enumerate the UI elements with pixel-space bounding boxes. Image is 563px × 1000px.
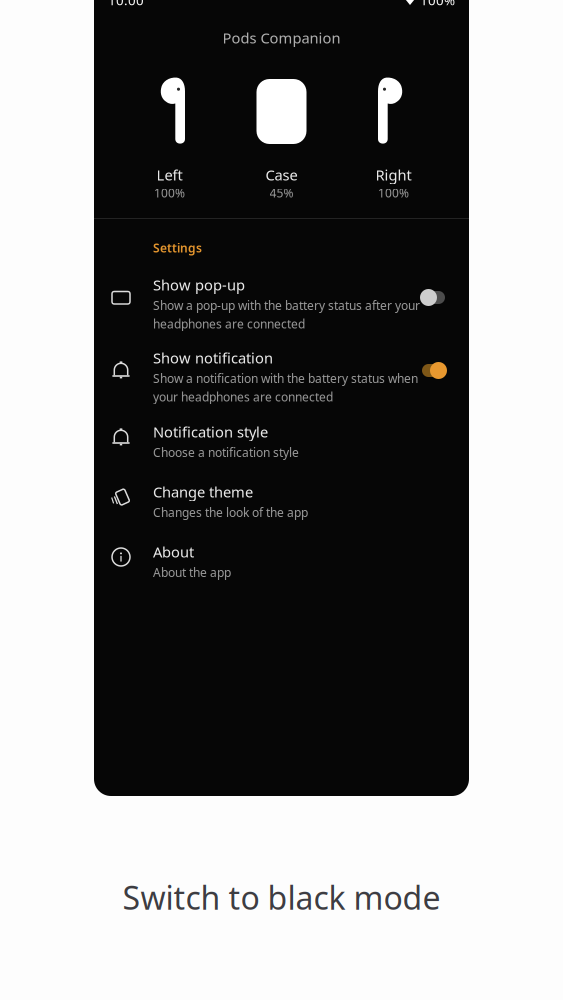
button[interactable]: Show pop-up: [94, 277, 469, 351]
staticText: 10:00: [108, 0, 144, 9]
staticText: Show a notification with the battery sta…: [153, 370, 418, 405]
staticText: Settings: [153, 240, 202, 256]
staticText: 45%: [269, 185, 293, 201]
button[interactable]: Show notification: [94, 350, 469, 424]
staticText: Show pop-up: [153, 275, 245, 294]
staticText: Notification style: [153, 422, 268, 441]
staticText: Show a pop-up with the battery status af…: [153, 297, 420, 332]
staticText: 100%: [378, 185, 409, 201]
button[interactable]: Notification style: [94, 424, 469, 498]
button[interactable]: About: [94, 544, 469, 618]
staticText: Choose a notification style: [153, 444, 299, 460]
staticText: Case: [265, 165, 297, 184]
staticText: Change theme: [153, 482, 253, 501]
staticText: Show notification: [153, 348, 273, 367]
staticText: About: [153, 542, 194, 561]
staticText: 100%: [154, 185, 185, 201]
staticText: Right: [375, 165, 411, 184]
staticText: 100%: [420, 0, 455, 9]
staticText: About the app: [153, 564, 231, 580]
staticText: Pods Companion: [222, 28, 340, 47]
staticText: Left: [156, 165, 182, 184]
staticText: Switch to black mode: [122, 876, 440, 918]
button[interactable]: Change theme: [94, 484, 469, 558]
staticText: Changes the look of the app: [153, 504, 308, 520]
